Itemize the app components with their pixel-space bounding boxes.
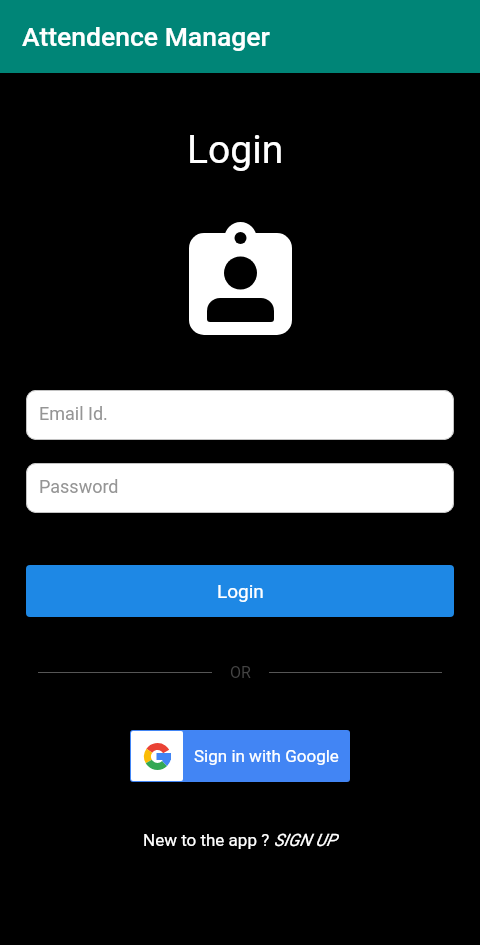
staticText: SIGN UP bbox=[274, 830, 337, 850]
button[interactable]: Login bbox=[26, 565, 454, 617]
staticText: Sign in with Google bbox=[194, 746, 339, 766]
staticText: Attendence Manager bbox=[22, 21, 270, 52]
staticText: Email Id. bbox=[39, 403, 108, 424]
staticText: Login bbox=[217, 580, 264, 602]
button[interactable]: Email Id. bbox=[26, 390, 454, 440]
staticText: Login bbox=[187, 127, 284, 173]
button[interactable]: Password bbox=[26, 463, 454, 513]
staticText: New to the app ? bbox=[143, 830, 274, 850]
staticText: Password bbox=[39, 476, 119, 497]
button[interactable]: New to the app ? bbox=[143, 830, 337, 850]
staticText: OR bbox=[230, 663, 251, 682]
button[interactable]: Sign in with Google bbox=[130, 730, 350, 782]
